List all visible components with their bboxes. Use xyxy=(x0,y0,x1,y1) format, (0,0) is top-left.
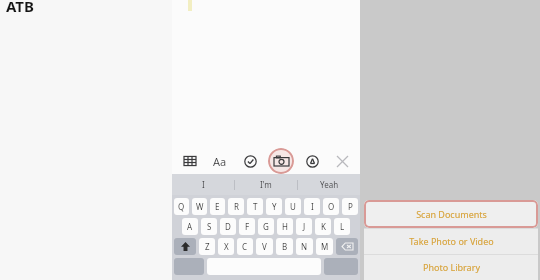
button[interactable]: Y xyxy=(266,198,282,215)
button[interactable]: Take Photo or Video xyxy=(364,228,538,254)
button[interactable]: X xyxy=(218,238,234,255)
staticText: I'm xyxy=(260,179,272,190)
button[interactable]: Backspace xyxy=(336,238,358,255)
button[interactable]: H xyxy=(277,218,293,235)
button[interactable]: Q xyxy=(174,198,189,215)
button[interactable]: Checklist xyxy=(238,149,262,173)
button[interactable]: L xyxy=(334,218,350,235)
button[interactable]: V xyxy=(256,238,273,255)
button[interactable]: M xyxy=(316,238,333,255)
staticText: Q xyxy=(178,201,185,212)
staticText: Z xyxy=(205,241,210,252)
staticText: K xyxy=(321,221,326,232)
button[interactable]: T xyxy=(247,198,263,215)
button[interactable]: A xyxy=(182,218,198,235)
staticText: T xyxy=(253,201,258,212)
staticText: S xyxy=(207,221,212,232)
staticText: G xyxy=(263,221,269,232)
staticText: ATB xyxy=(6,0,34,16)
button[interactable]: Insert table xyxy=(178,149,202,173)
staticText: I xyxy=(202,179,205,190)
button[interactable]: N xyxy=(296,238,313,255)
staticText: H xyxy=(282,221,288,232)
button[interactable]: Shift xyxy=(174,238,196,255)
button[interactable]: F xyxy=(239,218,255,235)
button[interactable]: J xyxy=(296,218,312,235)
staticText: Y xyxy=(272,201,277,212)
button[interactable]: Numbers xyxy=(174,258,204,275)
button[interactable]: I xyxy=(304,198,320,215)
staticText: V xyxy=(262,241,267,252)
staticText: U xyxy=(290,201,296,212)
button[interactable]: Close xyxy=(330,149,354,173)
staticText: F xyxy=(245,221,250,232)
button[interactable]: Photo Library xyxy=(364,254,538,280)
button[interactable]: O xyxy=(323,198,339,215)
button[interactable]: Camera xyxy=(268,148,294,174)
button[interactable]: W xyxy=(192,198,207,215)
button[interactable]: I'm xyxy=(235,174,297,195)
staticText: J xyxy=(303,221,306,232)
staticText: Scan Documents xyxy=(416,208,487,220)
staticText: B xyxy=(282,241,288,252)
staticText: N xyxy=(301,241,308,252)
staticText: X xyxy=(224,241,229,252)
staticText: O xyxy=(328,201,335,212)
staticText: E xyxy=(215,201,220,212)
button[interactable]: K xyxy=(315,218,331,235)
staticText: W xyxy=(196,201,204,212)
button[interactable]: S xyxy=(201,218,217,235)
button[interactable]: Markup xyxy=(300,149,324,173)
button[interactable]: R xyxy=(228,198,244,215)
staticText: Aa xyxy=(213,154,227,169)
staticText: C xyxy=(242,241,248,252)
staticText: A xyxy=(187,221,193,232)
staticText: M xyxy=(321,241,329,252)
button[interactable]: Z xyxy=(199,238,215,255)
button[interactable]: E xyxy=(210,198,225,215)
staticText: Take Photo or Video xyxy=(409,235,494,247)
button[interactable]: G xyxy=(258,218,274,235)
staticText: R xyxy=(234,201,239,212)
button[interactable]: D xyxy=(220,218,236,235)
button[interactable]: Scan Documents xyxy=(364,200,538,228)
staticText: Photo Library xyxy=(423,261,480,273)
button[interactable]: Yeah xyxy=(298,174,360,195)
button[interactable]: I xyxy=(172,174,234,195)
button[interactable]: P xyxy=(342,198,358,215)
button[interactable]: C xyxy=(237,238,253,255)
button[interactable]: Text format xyxy=(208,149,232,173)
staticText: I xyxy=(311,201,314,212)
button[interactable]: Return xyxy=(324,258,358,275)
staticText: L xyxy=(340,221,345,232)
button[interactable]: B xyxy=(276,238,293,255)
button[interactable]: U xyxy=(285,198,301,215)
staticText: D xyxy=(225,221,231,232)
staticText: P xyxy=(348,201,353,212)
staticText: Yeah xyxy=(320,179,339,190)
